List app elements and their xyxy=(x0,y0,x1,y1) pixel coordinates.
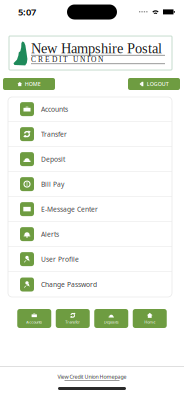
staticText: New Hampshire Postal xyxy=(31,40,162,56)
staticText: Change Password xyxy=(41,280,97,289)
staticText: Transfer xyxy=(65,319,80,325)
button[interactable]: Change Password xyxy=(8,272,172,297)
staticText: Accounts xyxy=(26,319,42,325)
button[interactable]: Transfer xyxy=(8,122,172,147)
staticText: Deposits xyxy=(104,319,119,325)
staticText: Alerts xyxy=(41,230,59,239)
button[interactable]: Home xyxy=(133,309,167,328)
button[interactable]: Alerts xyxy=(8,222,172,247)
staticText: Bill Pay xyxy=(41,180,64,189)
button[interactable]: LOGOUT xyxy=(128,78,180,90)
staticText: Home xyxy=(144,319,155,325)
staticText: Transfer xyxy=(41,130,67,139)
button[interactable]: View Credit Union Homepage xyxy=(57,367,126,387)
button[interactable]: Bill Pay xyxy=(8,172,172,197)
button[interactable]: Accounts xyxy=(8,97,172,122)
staticText: LOGOUT xyxy=(147,80,169,88)
button[interactable]: E-Message Center xyxy=(8,197,172,222)
staticText: 5:07 xyxy=(18,6,36,18)
staticText: HOME xyxy=(25,80,41,88)
button[interactable]: HOME xyxy=(3,78,55,90)
staticText: Accounts xyxy=(41,105,68,114)
staticText: View Credit Union Homepage xyxy=(57,373,126,380)
button[interactable]: User Profile xyxy=(8,247,172,272)
staticText: User Profile xyxy=(41,255,79,264)
staticText: C R E D I T U N I O N xyxy=(31,55,103,64)
button[interactable]: Deposit xyxy=(8,147,172,172)
staticText: Deposit xyxy=(41,155,65,164)
button[interactable]: Deposits xyxy=(94,309,128,328)
button[interactable]: Transfer xyxy=(56,309,90,328)
staticText: E-Message Center xyxy=(41,205,98,214)
button[interactable]: Accounts xyxy=(17,309,51,328)
